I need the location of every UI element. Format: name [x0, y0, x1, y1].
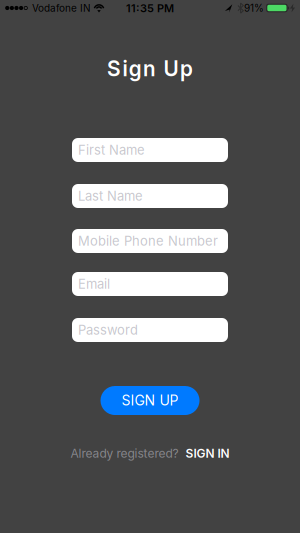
textField[interactable]: Email: [72, 272, 228, 296]
staticText: g: [129, 56, 142, 81]
staticText: 11:35 PM: [126, 2, 174, 15]
secureTextField[interactable]: Password: [72, 318, 228, 342]
staticText: SIGN IN: [185, 446, 229, 461]
staticText: U: [164, 56, 179, 81]
staticText: SIGN UP: [121, 392, 178, 409]
staticText: S: [107, 56, 121, 81]
button[interactable]: SIGN UP: [100, 386, 199, 415]
staticText: Mobile Phone Number: [78, 233, 218, 249]
textField[interactable]: Mobile Phone Number: [72, 229, 228, 253]
textField[interactable]: First Name: [72, 138, 228, 162]
staticText: Vodafone IN: [32, 2, 91, 14]
staticText: First Name: [78, 142, 145, 158]
button[interactable]: SIGN IN: [185, 446, 229, 461]
textField[interactable]: Last Name: [72, 184, 228, 208]
staticText: Email: [78, 276, 110, 292]
staticText: i: [122, 56, 127, 81]
staticText: Password: [78, 322, 138, 338]
staticText: Last Name: [78, 188, 143, 204]
staticText: n: [143, 56, 156, 81]
staticText: Already registered?: [70, 446, 178, 461]
staticText: 91%: [244, 2, 264, 14]
staticText: p: [180, 56, 193, 81]
